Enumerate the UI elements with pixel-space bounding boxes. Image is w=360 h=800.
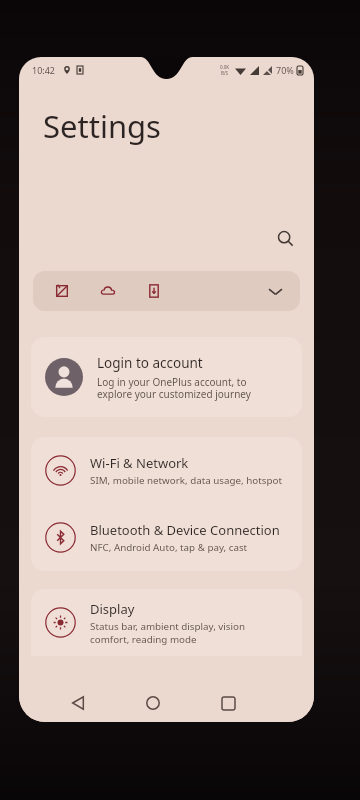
staticText: Bluetooth & Device Connection (90, 521, 280, 539)
button[interactable]: Storage (141, 278, 167, 304)
button[interactable]: Search settings (268, 221, 302, 255)
staticText: 10:42 (32, 64, 56, 76)
staticText: NFC, Android Auto, tap & pay, cast (90, 541, 248, 554)
staticText: Settings (43, 105, 161, 147)
button[interactable]: Bluetooth & Device Connection (31, 504, 302, 571)
staticText: Login to account (97, 354, 203, 372)
button[interactable]: Display (31, 589, 302, 656)
staticText: Log in your OnePlus account, to explore … (97, 375, 251, 401)
button[interactable]: Back (58, 684, 98, 722)
button[interactable]: Silent mode (49, 278, 75, 304)
staticText: Wi-Fi & Network (90, 454, 189, 472)
button[interactable]: Recent apps (208, 684, 248, 722)
staticText: Status bar, ambient display, vision comf… (90, 620, 246, 646)
button[interactable]: Silent mode (33, 271, 300, 311)
button[interactable]: Login to account (31, 337, 302, 417)
button[interactable]: Cloud backup (95, 278, 121, 304)
staticText: B/S (221, 70, 229, 76)
staticText: SIM, mobile network, data usage, hotspot (90, 474, 282, 487)
staticText: 0.0K (220, 64, 230, 70)
button[interactable]: Home (133, 684, 173, 722)
button[interactable]: Expand (260, 276, 290, 306)
staticText: Display (90, 600, 135, 618)
button[interactable]: Wi-Fi & Network (31, 437, 302, 504)
staticText: 70% (276, 64, 294, 76)
